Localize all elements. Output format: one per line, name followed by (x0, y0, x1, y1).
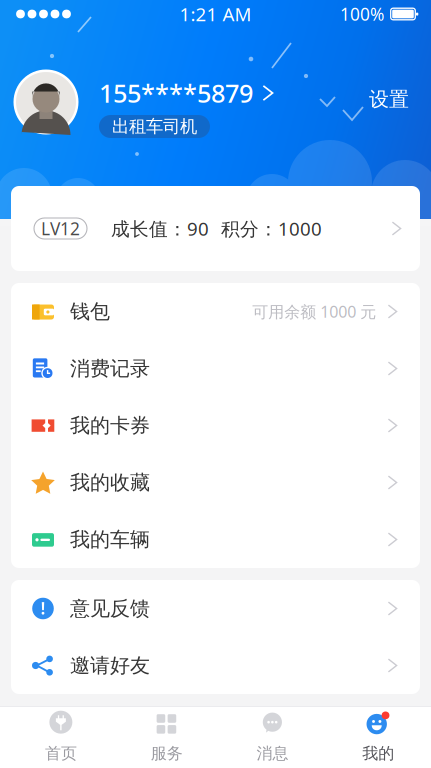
staticText: 邀请好友 (70, 653, 150, 678)
button[interactable]: 我的卡券 (11, 397, 420, 454)
button[interactable]: 钱包 (11, 283, 420, 340)
button[interactable]: 设置 (355, 77, 423, 122)
staticText: 设置 (369, 87, 409, 112)
staticText: 我的 (362, 744, 394, 763)
staticText: 首页 (45, 744, 77, 763)
button[interactable]: 消费记录 (11, 340, 420, 397)
button[interactable]: 邀请好友 (11, 637, 420, 694)
staticText: 我的车辆 (70, 527, 150, 552)
button[interactable]: 意见反馈 (11, 580, 420, 637)
staticText: LV12 (41, 217, 80, 240)
button[interactable]: 我的收藏 (11, 454, 420, 511)
button[interactable]: 服务 (114, 708, 220, 766)
staticText: 钱包 (70, 299, 110, 324)
staticText: 我的卡券 (70, 413, 150, 438)
button[interactable]: LV12 (11, 186, 420, 271)
button[interactable]: 消息 (219, 708, 325, 766)
button[interactable]: 我的车辆 (11, 511, 420, 568)
staticText: 出租车司机 (112, 116, 197, 137)
staticText: 意见反馈 (70, 596, 150, 621)
staticText: 可用余额 1000 元 (252, 301, 376, 322)
staticText: 积分：1000 (221, 216, 322, 241)
staticText: 我的收藏 (70, 470, 150, 495)
button[interactable]: 155****5879 (99, 78, 274, 108)
staticText: 消费记录 (70, 356, 150, 381)
button[interactable]: 首页 (8, 708, 114, 766)
staticText: 100% (340, 2, 384, 25)
staticText: 消息 (256, 744, 288, 763)
staticText: 1:21 AM (179, 2, 251, 26)
staticText: 155****5879 (99, 76, 253, 110)
staticText: 服务 (151, 744, 183, 763)
staticText: 成长值：90 (111, 216, 209, 241)
button[interactable]: 我的 (325, 708, 431, 766)
